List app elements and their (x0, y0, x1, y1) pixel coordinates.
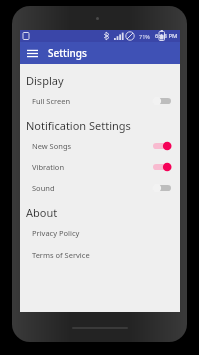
staticText: Full Screen (32, 96, 71, 106)
staticText: Vibration (32, 162, 65, 172)
staticText: 6:18 PM (155, 32, 178, 40)
staticText: Display (26, 73, 64, 88)
button[interactable]: Full Screen (20, 90, 180, 111)
staticText: Notification Settings (26, 118, 131, 133)
button[interactable]: Sound (20, 177, 180, 198)
staticText: Terms of Service (32, 250, 90, 260)
button[interactable]: New Songs (20, 135, 180, 156)
staticText: New Songs (32, 141, 72, 151)
staticText: 71% (139, 33, 150, 40)
button[interactable]: Privacy Policy (20, 222, 180, 244)
staticText: Sound (32, 183, 55, 193)
staticText: Settings (48, 46, 87, 60)
button[interactable]: Terms of Service (20, 244, 180, 266)
button[interactable]: Open navigation menu (24, 45, 40, 61)
button[interactable]: Vibration (20, 156, 180, 177)
staticText: About (26, 205, 58, 220)
staticText: Privacy Policy (32, 228, 80, 238)
